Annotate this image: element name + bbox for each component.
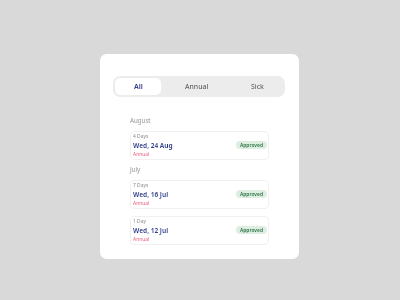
button[interactable]: Annual [161, 78, 233, 95]
staticText: Wed, 12 Jul [133, 226, 169, 235]
staticText: Wed, 24 Aug [133, 141, 173, 150]
staticText: 4 Days [133, 133, 149, 140]
button[interactable]: Sick [233, 78, 282, 95]
button[interactable]: All [115, 78, 161, 95]
button[interactable]: 1 Day [130, 216, 269, 245]
staticText: Sick [251, 82, 264, 91]
staticText: 1 Day [133, 218, 146, 225]
staticText: July [130, 165, 141, 173]
button[interactable]: 7 Days [130, 180, 269, 209]
staticText: Annual [133, 151, 150, 158]
staticText: All [134, 82, 143, 91]
staticText: 7 Days [133, 182, 149, 189]
staticText: Approved [240, 227, 263, 234]
staticText: Approved [240, 142, 263, 149]
staticText: August [130, 116, 151, 124]
staticText: Approved [240, 191, 263, 198]
staticText: Annual [185, 82, 209, 91]
staticText: Wed, 16 Jul [133, 190, 169, 199]
button[interactable]: 4 Days [130, 131, 269, 160]
staticText: Annual [133, 200, 150, 207]
staticText: Annual [133, 236, 150, 243]
